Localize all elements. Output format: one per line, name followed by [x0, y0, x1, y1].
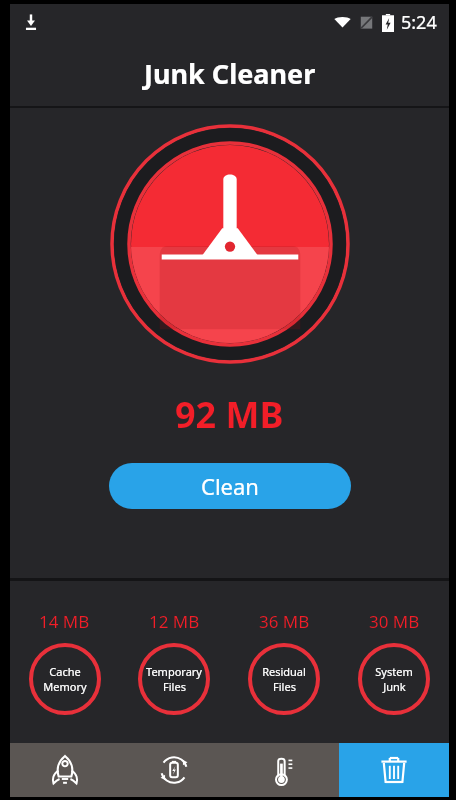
staticText: Junk: [383, 679, 406, 694]
button[interactable]: Junk cleaner: [339, 743, 449, 797]
staticText: 92 MB: [175, 390, 284, 439]
button[interactable]: 12 MB: [119, 581, 229, 743]
staticText: 12 MB: [149, 610, 200, 633]
button[interactable]: Junk Cleaner: [10, 40, 449, 106]
staticText: Junk Cleaner: [144, 55, 316, 92]
button[interactable]: 30 MB: [339, 581, 449, 743]
staticText: Temporary: [146, 664, 202, 679]
button[interactable]: Battery saver: [119, 743, 229, 797]
staticText: 36 MB: [259, 610, 310, 633]
button[interactable]: Boost: [10, 743, 119, 797]
staticText: Residual: [262, 664, 306, 679]
staticText: 14 MB: [39, 610, 90, 633]
button[interactable]: CPU cooler: [229, 743, 339, 797]
button[interactable]: Junk cleaner: [110, 124, 350, 364]
staticText: 30 MB: [369, 610, 420, 633]
staticText: 5:24: [401, 10, 437, 35]
button[interactable]: 36 MB: [229, 581, 339, 743]
staticText: Files: [273, 679, 296, 694]
staticText: System: [375, 664, 413, 679]
button[interactable]: 14 MB: [10, 581, 119, 743]
button[interactable]: Clean: [109, 463, 351, 509]
staticText: Files: [163, 679, 186, 694]
staticText: Memory: [43, 679, 87, 694]
staticText: Clean: [201, 471, 259, 501]
staticText: Cache: [49, 664, 81, 679]
